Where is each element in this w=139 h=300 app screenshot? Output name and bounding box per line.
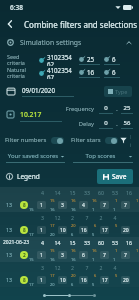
staticText: 7 xyxy=(124,202,127,209)
staticText: 1 xyxy=(40,202,43,209)
staticText: 7 xyxy=(103,252,106,259)
staticText: - xyxy=(116,106,118,113)
button[interactable]: 13 xyxy=(0,272,139,287)
staticText: 25 xyxy=(87,55,95,63)
staticText: 17 xyxy=(29,282,34,287)
staticText: 16 xyxy=(71,198,76,203)
button[interactable]: Filter numbers xyxy=(5,136,64,144)
staticText: 1 xyxy=(92,207,95,212)
staticText: 15 xyxy=(65,239,80,246)
staticText: Delay xyxy=(62,120,94,128)
staticText: 15 xyxy=(65,189,80,196)
staticText: 4 xyxy=(108,264,122,271)
staticText: Filter stars xyxy=(71,136,101,144)
staticText: 6:38 xyxy=(10,3,23,12)
staticText: 20 xyxy=(123,227,129,234)
button[interactable]: Simulation settings xyxy=(0,34,139,51)
staticText: 5 xyxy=(92,232,95,237)
staticText: 15 xyxy=(29,207,34,212)
staticText: 16 xyxy=(87,68,95,76)
staticText: 3 xyxy=(35,214,50,221)
staticText: 16 xyxy=(71,257,76,262)
staticText: 14 xyxy=(50,189,65,196)
button[interactable]: Legend xyxy=(6,170,40,183)
staticText: 16 xyxy=(71,207,76,212)
staticText: Save xyxy=(112,172,127,181)
staticText: 1 xyxy=(136,248,139,253)
button[interactable]: Pick date xyxy=(7,87,15,95)
button[interactable]: Top scores xyxy=(73,152,133,163)
staticText: 8 xyxy=(23,227,26,234)
staticText: Type xyxy=(115,88,128,95)
staticText: 8 xyxy=(23,202,26,209)
button[interactable]: Natural criteria xyxy=(0,66,139,79)
staticText: 5 xyxy=(115,223,118,228)
staticText: 6 xyxy=(71,282,74,287)
staticText: - xyxy=(116,121,118,128)
staticText: 53 xyxy=(108,239,122,246)
staticText: 33 xyxy=(80,189,94,196)
button[interactable]: Back xyxy=(0,14,20,34)
button[interactable]: 13 xyxy=(0,222,139,237)
button[interactable]: Filter stars xyxy=(71,136,118,144)
staticText: 20 xyxy=(50,232,55,237)
staticText: 17 xyxy=(29,232,34,237)
staticText: Simulation settings xyxy=(20,38,82,47)
staticText: 2021-06-23 xyxy=(3,239,30,246)
staticText: Top scores xyxy=(73,152,128,160)
staticText: 1 xyxy=(115,248,118,253)
staticText: 16 xyxy=(81,277,87,284)
staticText: 2 xyxy=(65,264,80,271)
staticText: 6 xyxy=(94,223,97,228)
staticText: 1 xyxy=(40,227,43,234)
staticText: 0 xyxy=(99,104,113,112)
staticText: 13 xyxy=(6,251,13,258)
staticText: 2 xyxy=(94,214,108,221)
staticText: 15 xyxy=(50,198,55,203)
staticText: 09/01/2020 xyxy=(22,86,55,94)
staticText: 7 xyxy=(80,214,94,221)
staticText: 2 xyxy=(94,264,108,271)
button[interactable]: Delay xyxy=(62,119,133,129)
button[interactable]: Frequency xyxy=(62,104,133,114)
staticText: 16 xyxy=(50,257,55,262)
staticText: 5 xyxy=(115,273,118,278)
staticText: 7 xyxy=(124,252,127,259)
staticText: 16 xyxy=(122,189,136,196)
staticText: 20 xyxy=(50,282,55,287)
staticText: 410235467 xyxy=(47,66,75,79)
staticText: 60 xyxy=(94,239,108,246)
staticText: 2 xyxy=(23,252,26,259)
staticText: 0 xyxy=(99,119,113,127)
staticText: 1 xyxy=(115,198,118,203)
staticText: 16 xyxy=(92,198,97,203)
button[interactable]: 13 xyxy=(0,197,139,212)
staticText: 1 xyxy=(136,198,139,203)
staticText: 14 xyxy=(50,239,65,246)
button[interactable]: Your saved scores xyxy=(6,152,65,163)
staticText: 4 xyxy=(35,189,50,196)
button[interactable]: Save xyxy=(97,169,133,184)
staticText: 13 xyxy=(6,226,13,233)
button[interactable]: Filter xyxy=(118,133,133,147)
staticText: 10 xyxy=(60,277,66,284)
staticText: 17 xyxy=(50,273,55,278)
staticText: 3 xyxy=(35,264,50,271)
staticText: 8 xyxy=(23,277,26,284)
button[interactable]: Seed criteria xyxy=(0,53,139,66)
staticText: 16 xyxy=(92,248,97,253)
staticText: Filter numbers xyxy=(5,136,47,144)
button[interactable]: Type xyxy=(104,86,132,97)
staticText: 6 xyxy=(82,252,85,259)
staticText: 3 xyxy=(61,202,64,209)
staticText: 60 xyxy=(94,189,108,196)
staticText: 53 xyxy=(108,189,122,196)
button[interactable]: 13 xyxy=(0,247,139,262)
staticText: 310235462 xyxy=(47,53,75,66)
staticText: 6 xyxy=(112,68,116,76)
staticText: 16 xyxy=(50,207,55,212)
staticText: 25 xyxy=(121,104,133,112)
staticText: 12 xyxy=(50,214,65,221)
